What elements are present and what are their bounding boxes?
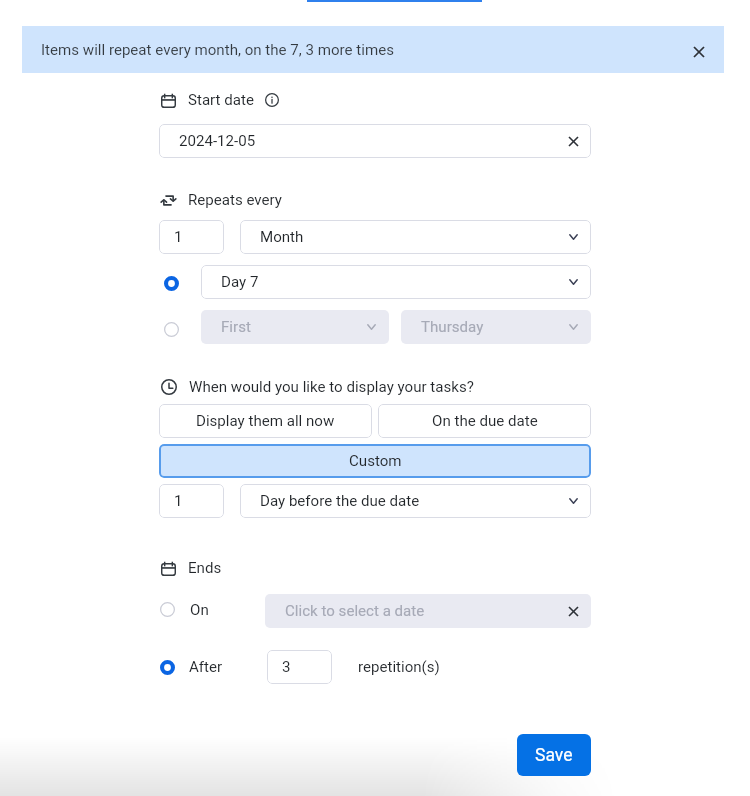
button[interactable]: End on a date bbox=[155, 597, 179, 621]
staticText: Items will repeat every month, on the 7,… bbox=[41, 41, 394, 59]
button[interactable]: More information bbox=[264, 92, 280, 108]
button[interactable]: 1 bbox=[159, 484, 224, 518]
staticText: On the due date bbox=[432, 412, 538, 430]
staticText: Custom bbox=[349, 452, 402, 470]
button[interactable]: 3 bbox=[267, 650, 332, 684]
button[interactable]: Click to select a date bbox=[265, 594, 591, 628]
button[interactable]: 1 bbox=[159, 220, 224, 254]
button[interactable]: Month bbox=[240, 220, 591, 254]
button[interactable]: Thursday bbox=[401, 310, 591, 344]
staticText: On bbox=[190, 601, 209, 619]
staticText: 3 bbox=[282, 658, 291, 676]
staticText: Ends bbox=[188, 559, 222, 577]
staticText: 2024-12-05 bbox=[179, 132, 256, 150]
button[interactable]: Dismiss notice bbox=[688, 41, 710, 63]
button[interactable]: Clear end date bbox=[563, 601, 584, 622]
button[interactable]: On the due date bbox=[378, 404, 591, 438]
button[interactable]: Repeat on weekday of month bbox=[159, 317, 183, 341]
staticText: Day before the due date bbox=[260, 492, 420, 510]
staticText: After bbox=[189, 658, 223, 676]
button[interactable]: 2024-12-05 bbox=[159, 124, 591, 158]
staticText: First bbox=[221, 318, 251, 336]
staticText: When would you like to display your task… bbox=[189, 378, 474, 396]
button[interactable]: Clear start date bbox=[563, 131, 584, 152]
button[interactable]: Day 7 bbox=[201, 265, 591, 299]
button[interactable]: Save bbox=[517, 734, 591, 776]
staticText: Thursday bbox=[421, 318, 484, 336]
staticText: 1 bbox=[174, 228, 183, 246]
staticText: Start date bbox=[188, 91, 254, 109]
staticText: Display them all now bbox=[196, 412, 335, 430]
button[interactable]: First bbox=[201, 310, 389, 344]
staticText: Day 7 bbox=[221, 273, 259, 291]
button[interactable]: Day before the due date bbox=[240, 484, 591, 518]
button[interactable]: End after a number of repetitions bbox=[155, 655, 179, 679]
staticText: repetition(s) bbox=[358, 658, 440, 676]
button[interactable]: Display them all now bbox=[159, 404, 372, 438]
staticText: Click to select a date bbox=[285, 602, 425, 620]
button[interactable]: Repeat on day of month bbox=[159, 271, 183, 295]
staticText: Month bbox=[260, 228, 304, 246]
staticText: Repeats every bbox=[188, 191, 282, 209]
button[interactable]: Custom bbox=[159, 444, 591, 478]
staticText: Save bbox=[535, 745, 573, 766]
staticText: 1 bbox=[174, 492, 183, 510]
